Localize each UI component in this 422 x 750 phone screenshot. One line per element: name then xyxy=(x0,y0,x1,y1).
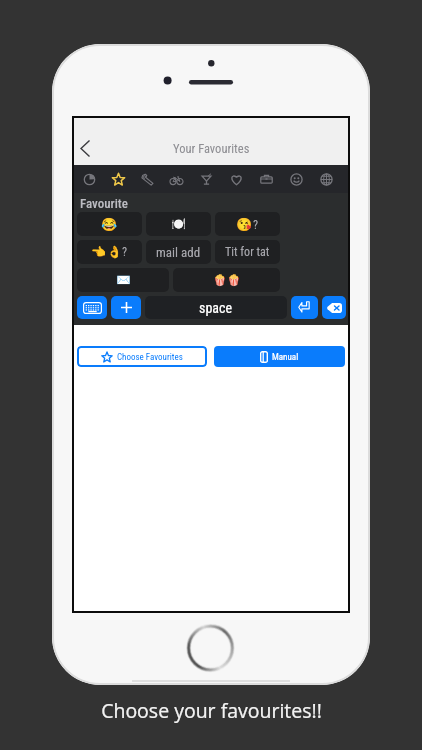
button[interactable]: Love xyxy=(221,165,251,193)
staticText: 😂 xyxy=(101,217,118,232)
button[interactable]: Tools xyxy=(133,165,162,193)
button[interactable]: 🍽️ xyxy=(146,212,211,236)
button[interactable]: Backspace xyxy=(322,296,346,319)
button[interactable]: Return xyxy=(291,296,318,319)
button[interactable]: Back xyxy=(68,131,102,165)
button[interactable]: Add xyxy=(111,296,141,319)
button[interactable]: 🍿 xyxy=(173,268,280,292)
button[interactable]: 😂 xyxy=(77,212,142,236)
button[interactable]: Keyboard xyxy=(77,296,107,319)
staticText: ? xyxy=(253,218,259,232)
button[interactable]: Food xyxy=(191,165,221,193)
button[interactable]: Smileys xyxy=(281,165,311,193)
button[interactable]: ✉️ xyxy=(77,268,169,292)
staticText: Manual xyxy=(272,352,299,363)
button[interactable]: Flags xyxy=(311,165,341,193)
staticText: Tit for tat xyxy=(225,245,270,259)
button[interactable]: Work xyxy=(251,165,281,193)
button[interactable]: Activity xyxy=(162,165,191,193)
button[interactable]: Recent xyxy=(75,165,104,193)
staticText: mail add xyxy=(156,245,201,260)
staticText: 🍿 xyxy=(213,274,227,287)
button[interactable]: 👈 xyxy=(77,240,142,264)
staticText: Choose Favourites xyxy=(117,352,183,363)
button[interactable]: Manual xyxy=(214,346,345,367)
button[interactable]: Tit for tat xyxy=(215,240,280,264)
button[interactable]: Favourites xyxy=(104,165,133,193)
staticText: Your Favourites xyxy=(173,141,250,156)
button[interactable]: mail add xyxy=(146,240,211,264)
staticText: 👌 xyxy=(107,245,122,259)
button[interactable]: 😘 xyxy=(215,212,280,236)
staticText: ? xyxy=(122,245,128,259)
button[interactable]: space xyxy=(145,296,287,319)
staticText: space xyxy=(199,300,233,316)
staticText: 🍿 xyxy=(227,274,241,287)
staticText: 😘 xyxy=(236,217,253,232)
staticText: 🍽️ xyxy=(171,217,186,231)
staticText: ✉️ xyxy=(116,273,131,287)
staticText: Favourite xyxy=(80,196,128,211)
staticText: 👈 xyxy=(91,245,106,259)
button[interactable]: Choose Favourites xyxy=(77,346,207,367)
staticText: Choose your favourites!! xyxy=(101,697,322,724)
